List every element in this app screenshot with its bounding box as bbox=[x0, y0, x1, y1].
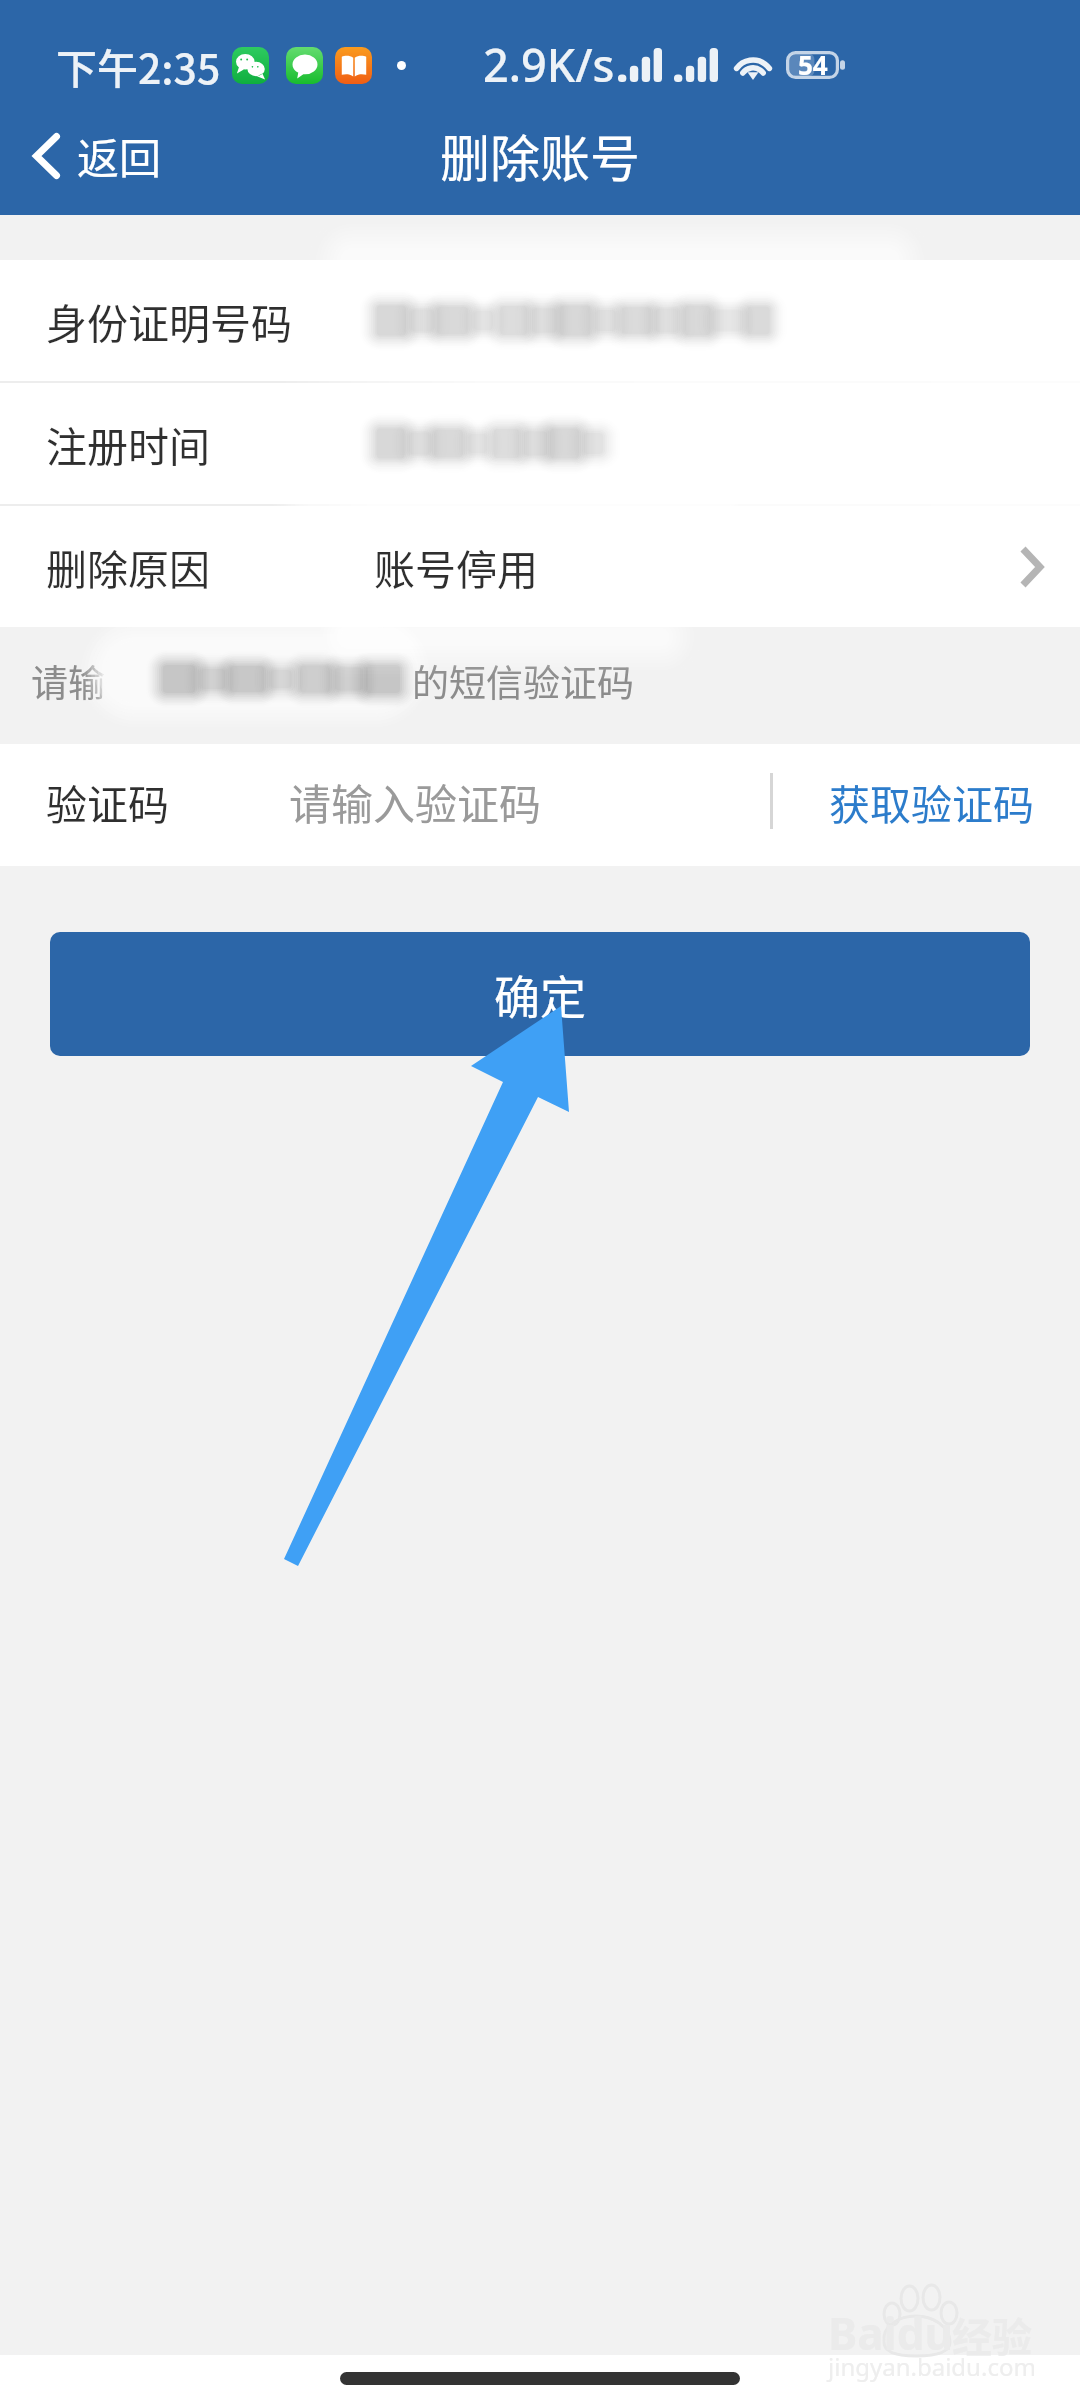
button[interactable]: 删除原因 bbox=[0, 506, 1080, 627]
staticText: 删除账号 bbox=[440, 119, 640, 191]
staticText: 获取验证码 bbox=[829, 772, 1034, 831]
staticText: 删除原因 bbox=[46, 537, 210, 596]
staticText: 确定 bbox=[494, 961, 586, 1028]
staticText: 的短信验证码 bbox=[412, 654, 634, 708]
staticText: 注册时间 bbox=[46, 414, 210, 473]
staticText: 下午2:35 bbox=[56, 36, 221, 95]
staticText: 验证码 bbox=[46, 772, 169, 831]
staticText: 返回 bbox=[77, 125, 162, 186]
button[interactable]: 注册时间 bbox=[0, 383, 1080, 504]
staticText: 54 bbox=[798, 47, 828, 82]
staticText: Baidu bbox=[828, 2303, 954, 2363]
button[interactable]: 获取验证码 bbox=[773, 772, 1080, 831]
staticText: 经验 bbox=[952, 2306, 1032, 2364]
staticText: 请输 bbox=[31, 654, 105, 708]
button[interactable]: 确定 bbox=[50, 932, 1030, 1056]
staticText: 请输入验证码 bbox=[289, 771, 542, 832]
staticText: jingyan.baidu.com bbox=[828, 2350, 1036, 2383]
staticText: 2.9K/s bbox=[483, 34, 615, 95]
staticText: 账号停用 bbox=[374, 537, 538, 596]
staticText: 身份证明号码 bbox=[46, 291, 292, 350]
button[interactable]: 身份证明号码 bbox=[0, 260, 1080, 381]
button[interactable]: 返回 bbox=[0, 111, 186, 200]
